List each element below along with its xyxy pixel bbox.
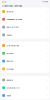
staticText: 9:41 <box>2 0 6 3</box>
staticText: › <box>47 10 48 13</box>
staticText: Date & Time <box>6 26 18 28</box>
staticText: Accessibility <box>6 86 19 89</box>
staticText: General <box>6 79 13 81</box>
button[interactable]: Date & Time <box>1 23 49 31</box>
staticText: › <box>47 17 48 21</box>
button[interactable]: General <box>1 76 49 84</box>
button[interactable]: Storage <box>1 65 49 73</box>
staticText: › <box>47 94 48 97</box>
button[interactable]: Sound <box>1 31 49 39</box>
button[interactable]: Notifications <box>1 42 49 49</box>
staticText: Sound <box>6 34 11 36</box>
staticText: › <box>47 59 48 63</box>
staticText: Additional Settings <box>2 4 22 7</box>
button[interactable]: Display <box>1 8 49 15</box>
staticText: About <box>6 94 11 97</box>
staticText: Language & Input <box>6 18 22 21</box>
staticText: Notifications <box>6 44 19 47</box>
staticText: Privacy <box>6 52 13 55</box>
staticText: › <box>47 78 48 82</box>
staticText: › <box>47 44 48 47</box>
staticText: › <box>47 51 48 55</box>
staticText: › <box>47 33 48 37</box>
staticText: › <box>47 25 48 29</box>
button[interactable]: Accessibility <box>1 84 49 92</box>
button[interactable]: Battery <box>1 57 49 65</box>
button[interactable]: Privacy <box>1 49 49 57</box>
button[interactable]: About <box>1 92 49 99</box>
staticText: › <box>47 86 48 89</box>
button[interactable]: Language & Input <box>1 15 49 23</box>
staticText: Storage <box>6 68 13 70</box>
staticText: Display <box>6 10 13 13</box>
staticText: › <box>47 67 48 71</box>
staticText: Battery <box>6 60 13 62</box>
